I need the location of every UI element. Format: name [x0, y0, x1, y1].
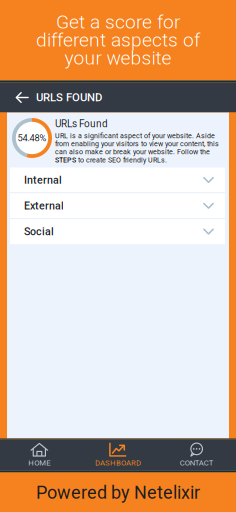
button[interactable]: Social [10, 219, 225, 244]
staticText: URLS FOUND [36, 91, 102, 104]
staticText: Get a score for [56, 11, 180, 33]
staticText: different aspects of [36, 29, 200, 51]
staticText: 54.48% [17, 132, 46, 143]
staticText: URLs Found [55, 118, 108, 130]
button[interactable]: HOME [0, 439, 79, 470]
button[interactable]: CONTACT [157, 439, 236, 470]
staticText: HOME [28, 458, 50, 467]
button[interactable]: External [10, 193, 225, 218]
staticText: DASHBOARD [95, 458, 141, 467]
button[interactable]: DASHBOARD [79, 439, 157, 470]
button[interactable]: Back [8, 82, 36, 112]
staticText: Internal [24, 174, 62, 186]
staticText: Social [24, 225, 54, 238]
staticText: your website [64, 47, 171, 69]
staticText: External [24, 199, 64, 212]
staticText: CONTACT [180, 458, 214, 467]
staticText: Powered by Netelixir [36, 482, 200, 503]
staticText: URL is a significant aspect of your webs… [55, 132, 219, 164]
button[interactable]: Internal [10, 167, 225, 192]
